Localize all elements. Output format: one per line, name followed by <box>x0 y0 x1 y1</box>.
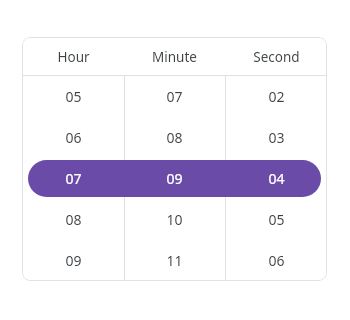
staticText: 08 <box>166 128 183 147</box>
button[interactable]: 07 <box>22 158 124 199</box>
staticText: Hour <box>57 48 90 66</box>
button[interactable]: 06 <box>225 240 327 281</box>
button[interactable]: 02 <box>225 76 327 117</box>
button[interactable]: Hour <box>22 37 124 76</box>
button[interactable]: 09 <box>22 240 124 281</box>
staticText: 11 <box>166 251 183 270</box>
button[interactable]: 10 <box>124 199 225 240</box>
staticText: 07 <box>65 169 82 188</box>
staticText: 06 <box>268 251 285 270</box>
staticText: 02 <box>268 87 285 106</box>
button[interactable]: 11 <box>124 240 225 281</box>
staticText: 05 <box>268 210 285 229</box>
button[interactable]: 07 <box>124 76 225 117</box>
button[interactable]: 09 <box>124 158 225 199</box>
staticText: 09 <box>65 251 82 270</box>
staticText: 03 <box>268 128 285 147</box>
button[interactable]: 08 <box>124 117 225 158</box>
button[interactable]: 03 <box>225 117 327 158</box>
staticText: 04 <box>268 169 285 188</box>
staticText: 05 <box>65 87 82 106</box>
staticText: 06 <box>65 128 82 147</box>
button[interactable]: 08 <box>22 199 124 240</box>
button[interactable]: 06 <box>22 117 124 158</box>
staticText: Minute <box>152 48 197 66</box>
button[interactable]: 05 <box>225 199 327 240</box>
button[interactable]: Minute <box>124 37 225 76</box>
staticText: 10 <box>166 210 183 229</box>
staticText: Second <box>253 48 300 66</box>
button[interactable]: Second <box>225 37 327 76</box>
staticText: 07 <box>166 87 183 106</box>
staticText: 08 <box>65 210 82 229</box>
button[interactable]: 05 <box>22 76 124 117</box>
button[interactable]: 04 <box>225 158 327 199</box>
staticText: 09 <box>166 169 183 188</box>
